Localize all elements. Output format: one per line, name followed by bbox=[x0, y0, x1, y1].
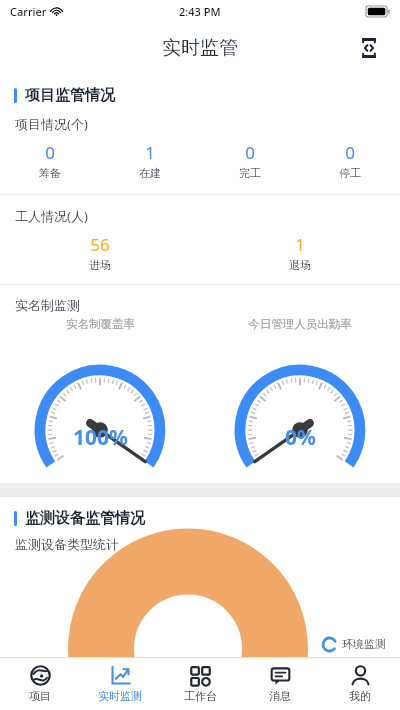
staticText: 1 bbox=[145, 141, 155, 164]
button[interactable]: 实名制覆盖率 bbox=[0, 313, 200, 467]
button[interactable]: 今日管理人员出勤率 bbox=[200, 313, 400, 467]
button[interactable]: 56 bbox=[0, 231, 200, 274]
button[interactable]: 0 bbox=[300, 139, 400, 182]
staticText: 消息 bbox=[269, 689, 291, 703]
staticText: 停工 bbox=[339, 166, 361, 180]
staticText: 100% bbox=[73, 423, 128, 452]
staticText: 监测设备监管情况 bbox=[25, 509, 145, 528]
staticText: 0 bbox=[45, 141, 55, 164]
staticText: 项目情况(个) bbox=[15, 115, 88, 133]
staticText: 我的 bbox=[349, 689, 371, 703]
staticText: 项目 bbox=[29, 689, 51, 703]
staticText: 退场 bbox=[289, 258, 311, 272]
staticText: 项目监管情况 bbox=[25, 86, 115, 105]
staticText: 今日管理人员出勤率 bbox=[248, 317, 352, 331]
staticText: 1 bbox=[295, 233, 305, 256]
button[interactable]: 工作台 bbox=[160, 661, 240, 707]
button[interactable]: 消息 bbox=[240, 661, 320, 707]
button[interactable]: 项目 bbox=[0, 661, 80, 707]
staticText: 56 bbox=[90, 233, 110, 256]
staticText: 实时监管 bbox=[162, 36, 238, 60]
staticText: 实名制覆盖率 bbox=[66, 317, 135, 331]
button[interactable]: 1 bbox=[200, 231, 400, 274]
button[interactable]: 我的 bbox=[320, 661, 400, 707]
staticText: 0% bbox=[285, 423, 316, 452]
button[interactable]: 实时监测 bbox=[80, 661, 160, 707]
button[interactable]: 扫一扫 bbox=[352, 31, 386, 65]
staticText: 0 bbox=[245, 141, 255, 164]
staticText: 监测设备类型统计 bbox=[15, 536, 119, 552]
staticText: 2:43 PM bbox=[179, 4, 221, 19]
staticText: 在建 bbox=[139, 166, 161, 180]
staticText: 工作台 bbox=[184, 689, 217, 703]
staticText: 实时监测 bbox=[98, 689, 142, 703]
staticText: 0 bbox=[345, 141, 355, 164]
staticText: Carrier bbox=[10, 4, 47, 19]
staticText: 工人情况(人) bbox=[15, 207, 88, 225]
button[interactable]: 0 bbox=[0, 139, 100, 182]
staticText: 环境监测 bbox=[342, 637, 386, 651]
staticText: 筹备 bbox=[39, 166, 61, 180]
staticText: 进场 bbox=[89, 258, 111, 272]
staticText: 完工 bbox=[239, 166, 261, 180]
staticText: 实名制监测 bbox=[15, 297, 80, 313]
button[interactable]: 0 bbox=[200, 139, 300, 182]
button[interactable]: 1 bbox=[100, 139, 200, 182]
